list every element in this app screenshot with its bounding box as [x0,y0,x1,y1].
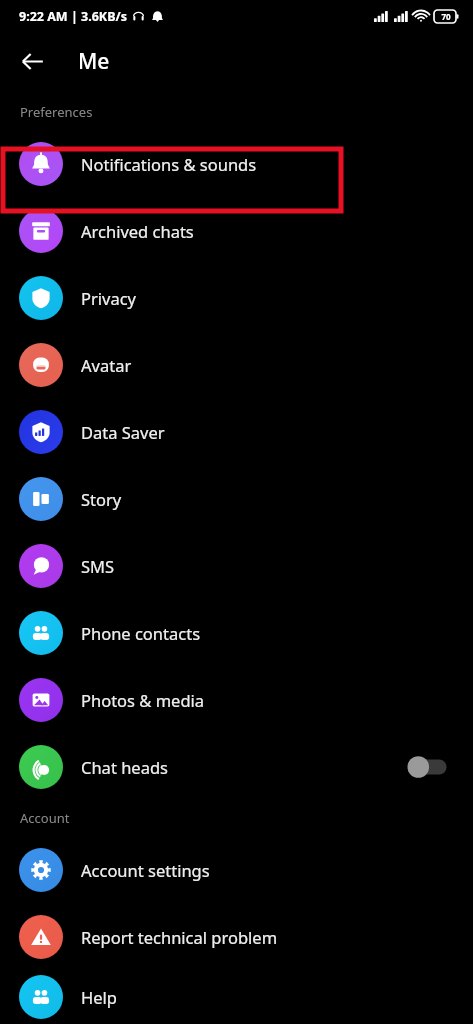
button[interactable]: Privacy [0,264,473,331]
staticText: Chat heads [81,756,168,778]
staticText: 9:22 AM | 3.6KB/s [19,8,127,25]
button[interactable]: Phone contacts [0,599,473,666]
staticText: Help [81,986,117,1008]
staticText: Preferences [20,103,93,121]
button[interactable]: Archived chats [0,197,473,264]
staticText: Archived chats [81,220,194,242]
staticText: Notifications & sounds [81,153,257,175]
staticText: Photos & media [81,689,205,711]
button[interactable]: Notifications & sounds [0,130,473,197]
staticText: Privacy [81,287,137,309]
button[interactable]: Help [0,970,473,1024]
button[interactable]: Data Saver [0,398,473,465]
button[interactable]: Avatar [0,331,473,398]
staticText: SMS [81,555,115,577]
button[interactable]: Account settings [0,836,473,903]
staticText: Phone contacts [81,622,201,644]
staticText: Avatar [81,354,132,376]
button[interactable]: Report technical problem [0,903,473,970]
button[interactable]: Back [8,37,56,85]
staticText: Account [20,809,70,827]
button[interactable]: Story [0,465,473,532]
button[interactable]: Chat heads [0,733,473,800]
button[interactable]: SMS [0,532,473,599]
staticText: 70 [441,11,451,22]
staticText: Data Saver [81,421,165,443]
staticText: Account settings [81,859,210,881]
staticText: Report technical problem [81,926,278,948]
staticText: Me [78,47,110,76]
button[interactable]: Photos & media [0,666,473,733]
staticText: Story [81,488,122,510]
